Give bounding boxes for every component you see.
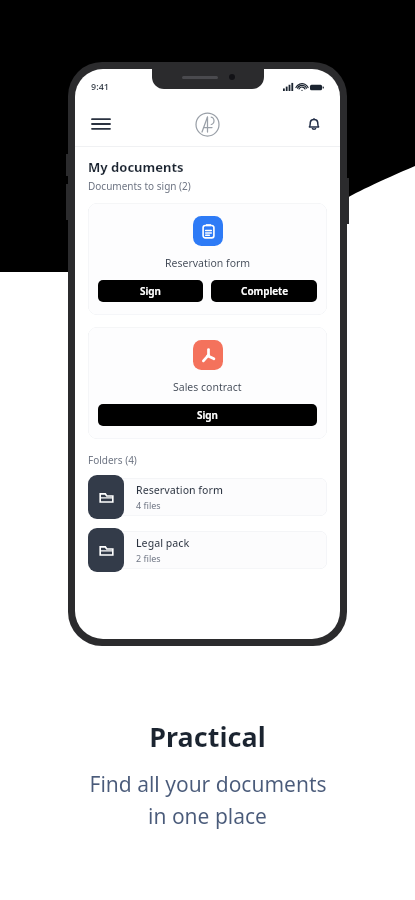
button[interactable]: Notifications [301,111,327,137]
staticText: Legal pack [136,536,190,550]
button[interactable]: Sales contract [88,327,327,439]
staticText: Complete [241,284,288,298]
staticText: Documents to sign (2) [88,179,191,193]
staticText: Reservation form [165,256,251,270]
button[interactable]: Sign [98,404,317,426]
staticText: Find all your documents [89,770,327,799]
staticText: Reservation form [136,483,223,497]
staticText: Sign [197,408,218,422]
staticText: 9:41 [91,80,109,92]
button[interactable]: Open menu [88,111,114,137]
button[interactable]: Legal pack [88,528,327,572]
button[interactable]: Reservation form [88,475,327,519]
staticText: Sign [140,284,161,298]
staticText: Practical [149,718,266,755]
staticText: My documents [88,158,184,176]
staticText: Folders (4) [88,453,137,467]
staticText: 4 files [136,499,161,511]
button[interactable]: Reservation form [88,203,327,315]
staticText: 2 files [136,552,161,564]
button[interactable]: Complete [211,280,317,302]
staticText: Sales contract [173,380,242,394]
staticText: in one place [148,802,267,831]
button[interactable]: Sign [98,280,203,302]
